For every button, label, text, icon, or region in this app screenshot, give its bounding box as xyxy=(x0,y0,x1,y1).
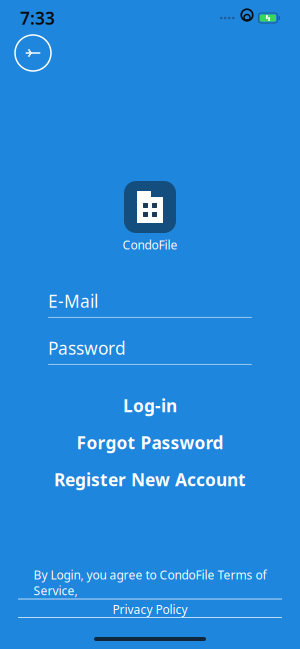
staticText: Forgot Password xyxy=(76,431,223,454)
staticText: E-Mail xyxy=(48,289,98,312)
button[interactable]: Register New Account xyxy=(0,461,300,498)
button[interactable]: Forgot Password xyxy=(0,424,300,461)
button[interactable]: By Login, you agree to CondoFile Terms o… xyxy=(0,564,300,621)
staticText: Register New Account xyxy=(54,468,246,491)
staticText: Privacy Policy xyxy=(112,601,187,617)
staticText: By Login, you agree to CondoFile Terms o… xyxy=(33,567,266,599)
staticText: Log-in xyxy=(123,394,177,417)
button[interactable]: Back xyxy=(11,31,55,75)
button[interactable]: Log-in xyxy=(0,387,300,424)
staticText: CondoFile xyxy=(122,237,177,253)
staticText: Password xyxy=(48,336,126,359)
staticText: 7:33 xyxy=(20,6,55,29)
